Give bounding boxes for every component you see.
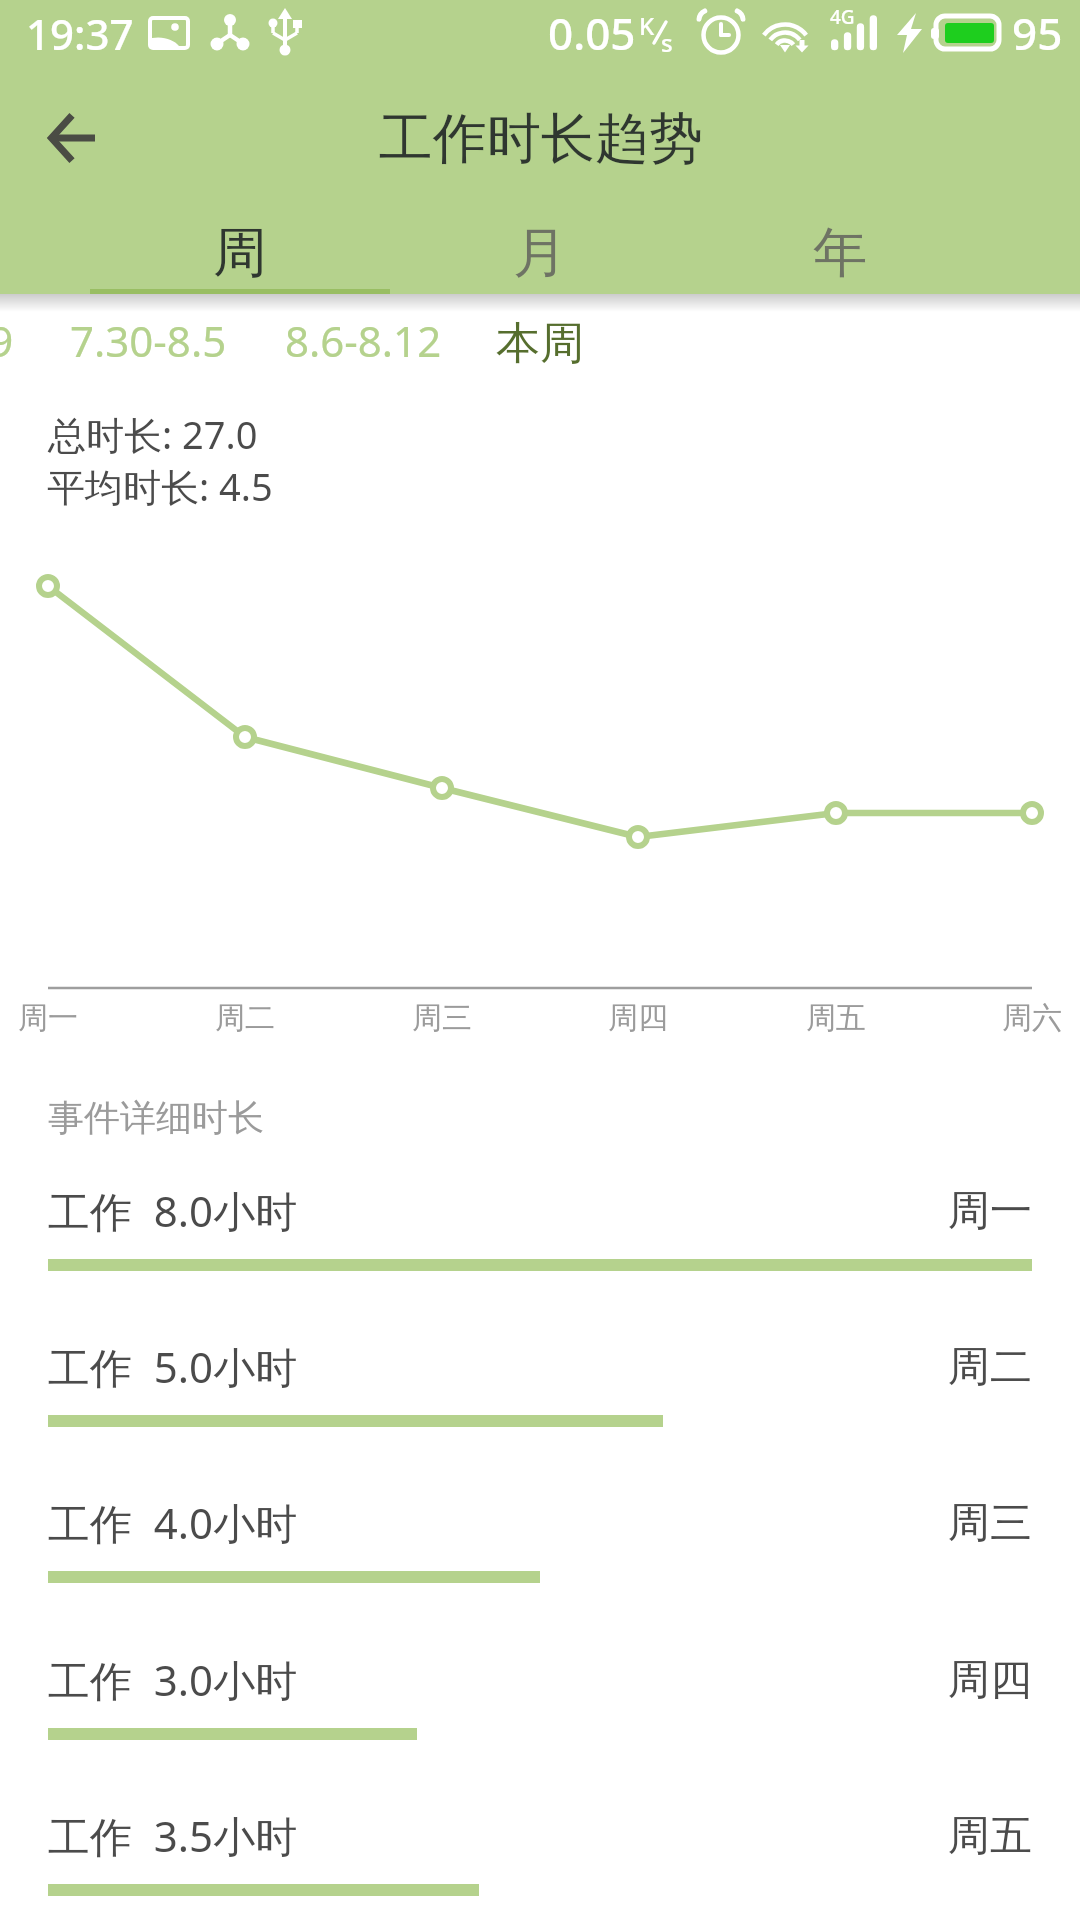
staticText: 工作时长趋势 xyxy=(379,105,703,173)
staticText: 总时长: 27.0 xyxy=(48,408,258,460)
staticText: 周四 xyxy=(948,1654,1032,1707)
staticText: 平均时长: 4.5 xyxy=(47,460,273,512)
staticText: 95 xyxy=(1012,3,1063,63)
staticText: 周四 xyxy=(608,999,668,1037)
staticText: 年 xyxy=(813,219,867,287)
staticText: 周二 xyxy=(948,1341,1032,1394)
button[interactable]: 本周 xyxy=(486,298,584,372)
staticText: 周三 xyxy=(412,999,472,1037)
staticText: 工作 4.0小时 xyxy=(48,1494,298,1551)
staticText: 本周 xyxy=(496,316,584,371)
staticText: 19:37 xyxy=(26,5,134,62)
button[interactable]: 8.6-8.12 xyxy=(275,298,442,372)
staticText: 0.05 xyxy=(548,3,636,63)
button[interactable]: 周 xyxy=(90,207,390,299)
button[interactable]: Back xyxy=(34,100,110,176)
button[interactable]: 工作 4.0小时 xyxy=(0,1498,1080,1614)
staticText: 周一 xyxy=(18,999,78,1037)
staticText: 工作 8.0小时 xyxy=(48,1182,298,1239)
button[interactable]: 工作 8.0小时 xyxy=(0,1186,1080,1302)
button[interactable]: 工作 5.0小时 xyxy=(0,1342,1080,1458)
button[interactable]: 月 xyxy=(390,207,690,299)
staticText: 周六 xyxy=(1002,999,1062,1037)
staticText: 周二 xyxy=(215,999,275,1037)
staticText: 4G xyxy=(830,4,855,30)
staticText: 事件详细时长 xyxy=(48,1095,264,1140)
button[interactable]: 7.23-7.29 xyxy=(0,298,14,372)
staticText: 周一 xyxy=(948,1185,1032,1238)
button[interactable]: 工作时长趋势 xyxy=(379,105,703,173)
staticText: 7.23-7.29 xyxy=(0,312,14,369)
staticText: 周五 xyxy=(806,999,866,1037)
staticText: K xyxy=(639,9,655,42)
staticText: s xyxy=(661,26,673,59)
staticText: 7.30-8.5 xyxy=(70,312,227,369)
staticText: 月 xyxy=(513,219,567,287)
button[interactable]: 工作 3.5小时 xyxy=(0,1811,1080,1920)
button[interactable]: 工作 3.0小时 xyxy=(0,1655,1080,1771)
staticText: 周 xyxy=(213,219,267,287)
staticText: 周三 xyxy=(948,1497,1032,1550)
button[interactable]: 7.30-8.5 xyxy=(60,298,227,372)
staticText: 工作 3.0小时 xyxy=(48,1651,298,1708)
staticText: 工作 5.0小时 xyxy=(48,1338,298,1395)
staticText: 周五 xyxy=(948,1810,1032,1863)
staticText: 工作 3.5小时 xyxy=(48,1807,298,1864)
staticText: 8.6-8.12 xyxy=(285,312,442,369)
button[interactable]: 年 xyxy=(690,207,990,299)
